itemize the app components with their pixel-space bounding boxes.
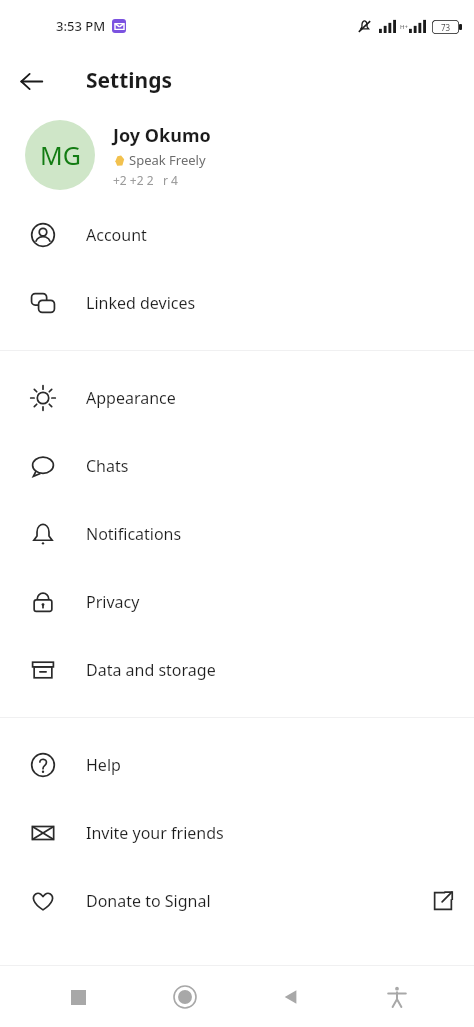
button[interactable]: Appearance (0, 364, 474, 432)
staticText: Account (86, 224, 147, 246)
staticText: Joy Okumo (113, 123, 211, 148)
staticText: Linked devices (86, 292, 196, 314)
staticText: Donate to Signal (86, 890, 211, 912)
button[interactable]: Help (0, 731, 474, 799)
staticText: Invite your friends (86, 822, 224, 844)
button[interactable]: Linked devices (0, 269, 474, 337)
button[interactable]: Chats (0, 432, 474, 500)
staticText: +2 +2 2 r 4 (113, 172, 178, 188)
staticText: Settings (86, 66, 173, 95)
button[interactable]: Privacy (0, 568, 474, 636)
staticText: Notifications (86, 523, 182, 545)
button[interactable]: Home (162, 974, 208, 1020)
staticText: 73 (441, 22, 451, 33)
staticText: 3:53 PM (56, 17, 106, 35)
button[interactable]: Donate to Signal (0, 867, 474, 935)
button[interactable]: Data and storage (0, 636, 474, 704)
staticText: Data and storage (86, 659, 216, 681)
button[interactable]: Notifications (0, 500, 474, 568)
button[interactable]: Account (0, 201, 474, 269)
button[interactable]: Recents (55, 974, 101, 1020)
staticText: Chats (86, 455, 129, 477)
staticText: H+ (400, 23, 408, 31)
staticText: Privacy (86, 591, 140, 613)
button[interactable]: Invite your friends (0, 799, 474, 867)
button[interactable]: Back (9, 59, 53, 103)
staticText: MG (40, 138, 81, 172)
staticText: Help (86, 754, 121, 776)
button[interactable]: MG (0, 109, 474, 201)
button[interactable]: Accessibility (374, 974, 420, 1020)
button[interactable]: Back (268, 974, 314, 1020)
staticText: Speak Freely (129, 151, 206, 169)
staticText: Appearance (86, 387, 176, 409)
